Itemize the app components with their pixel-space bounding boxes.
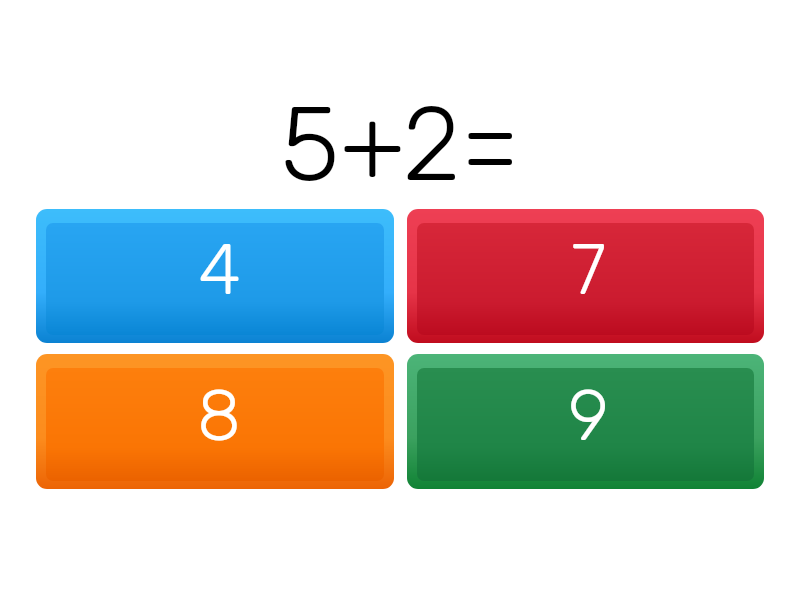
button[interactable]: 9 [407, 354, 764, 489]
button[interactable]: 4 [36, 209, 394, 343]
staticText: 5+2= [280, 83, 520, 206]
staticText: 9 [568, 374, 609, 458]
staticText: 7 [571, 228, 606, 312]
button[interactable]: 8 [36, 354, 394, 489]
staticText: 4 [198, 228, 241, 312]
button[interactable]: 7 [407, 209, 764, 343]
staticText: 8 [197, 374, 241, 458]
